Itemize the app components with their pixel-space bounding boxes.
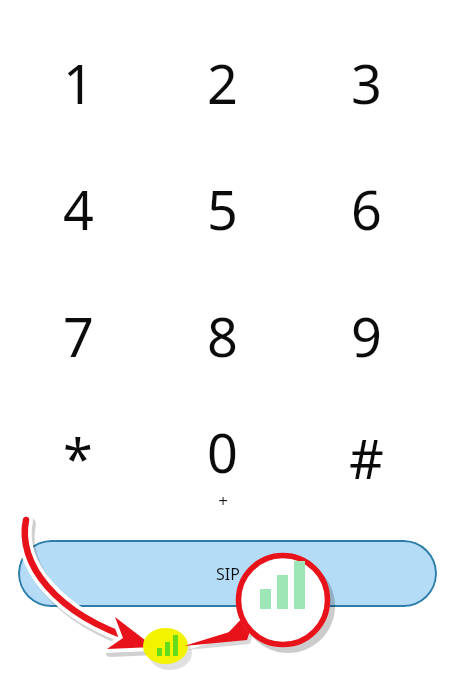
staticText: * xyxy=(63,421,93,495)
button[interactable]: Signal strength indicator xyxy=(143,628,189,666)
staticText: SIP xyxy=(216,563,240,585)
button[interactable]: 6 xyxy=(296,150,436,268)
staticText: 3 xyxy=(351,46,382,120)
staticText: + xyxy=(218,489,228,512)
staticText: 0 xyxy=(207,415,238,489)
staticText: 1 xyxy=(63,46,94,120)
button[interactable]: 8 xyxy=(152,277,292,395)
button[interactable]: 2 xyxy=(152,24,292,142)
button[interactable]: 1 xyxy=(8,24,148,142)
button[interactable]: 0 xyxy=(152,399,292,517)
staticText: 9 xyxy=(351,299,382,373)
button[interactable]: 3 xyxy=(296,24,436,142)
button[interactable]: 4 xyxy=(8,150,148,268)
button[interactable]: 5 xyxy=(152,150,292,268)
staticText: # xyxy=(349,421,384,495)
button[interactable]: * xyxy=(8,399,148,517)
button[interactable]: 9 xyxy=(296,277,436,395)
button[interactable]: # xyxy=(296,399,436,517)
staticText: 6 xyxy=(351,172,382,246)
staticText: 7 xyxy=(63,299,94,373)
button[interactable]: SIP xyxy=(18,540,437,607)
staticText: 5 xyxy=(207,172,238,246)
staticText: 4 xyxy=(63,172,94,246)
staticText: 8 xyxy=(207,299,238,373)
button[interactable]: 7 xyxy=(8,277,148,395)
staticText: 2 xyxy=(207,46,238,120)
